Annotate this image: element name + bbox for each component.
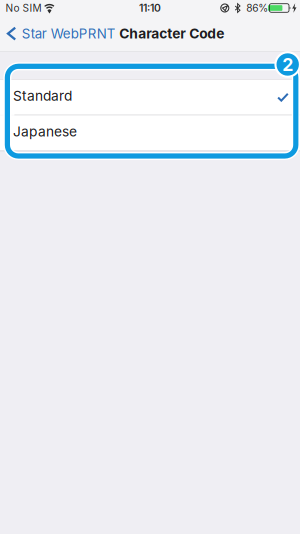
staticText: 86% bbox=[246, 2, 268, 14]
staticText: Japanese bbox=[13, 123, 77, 140]
staticText: Standard bbox=[13, 87, 72, 104]
button[interactable]: Star WebPRNT bbox=[0, 16, 119, 51]
staticText: Character Code bbox=[119, 25, 224, 42]
staticText: 2 bbox=[282, 54, 293, 75]
staticText: Star WebPRNT bbox=[22, 25, 116, 42]
button[interactable]: Japanese bbox=[0, 115, 300, 151]
staticText: No SIM bbox=[6, 2, 42, 14]
staticText: 11:10 bbox=[139, 2, 161, 14]
button[interactable]: Standard bbox=[0, 80, 300, 115]
